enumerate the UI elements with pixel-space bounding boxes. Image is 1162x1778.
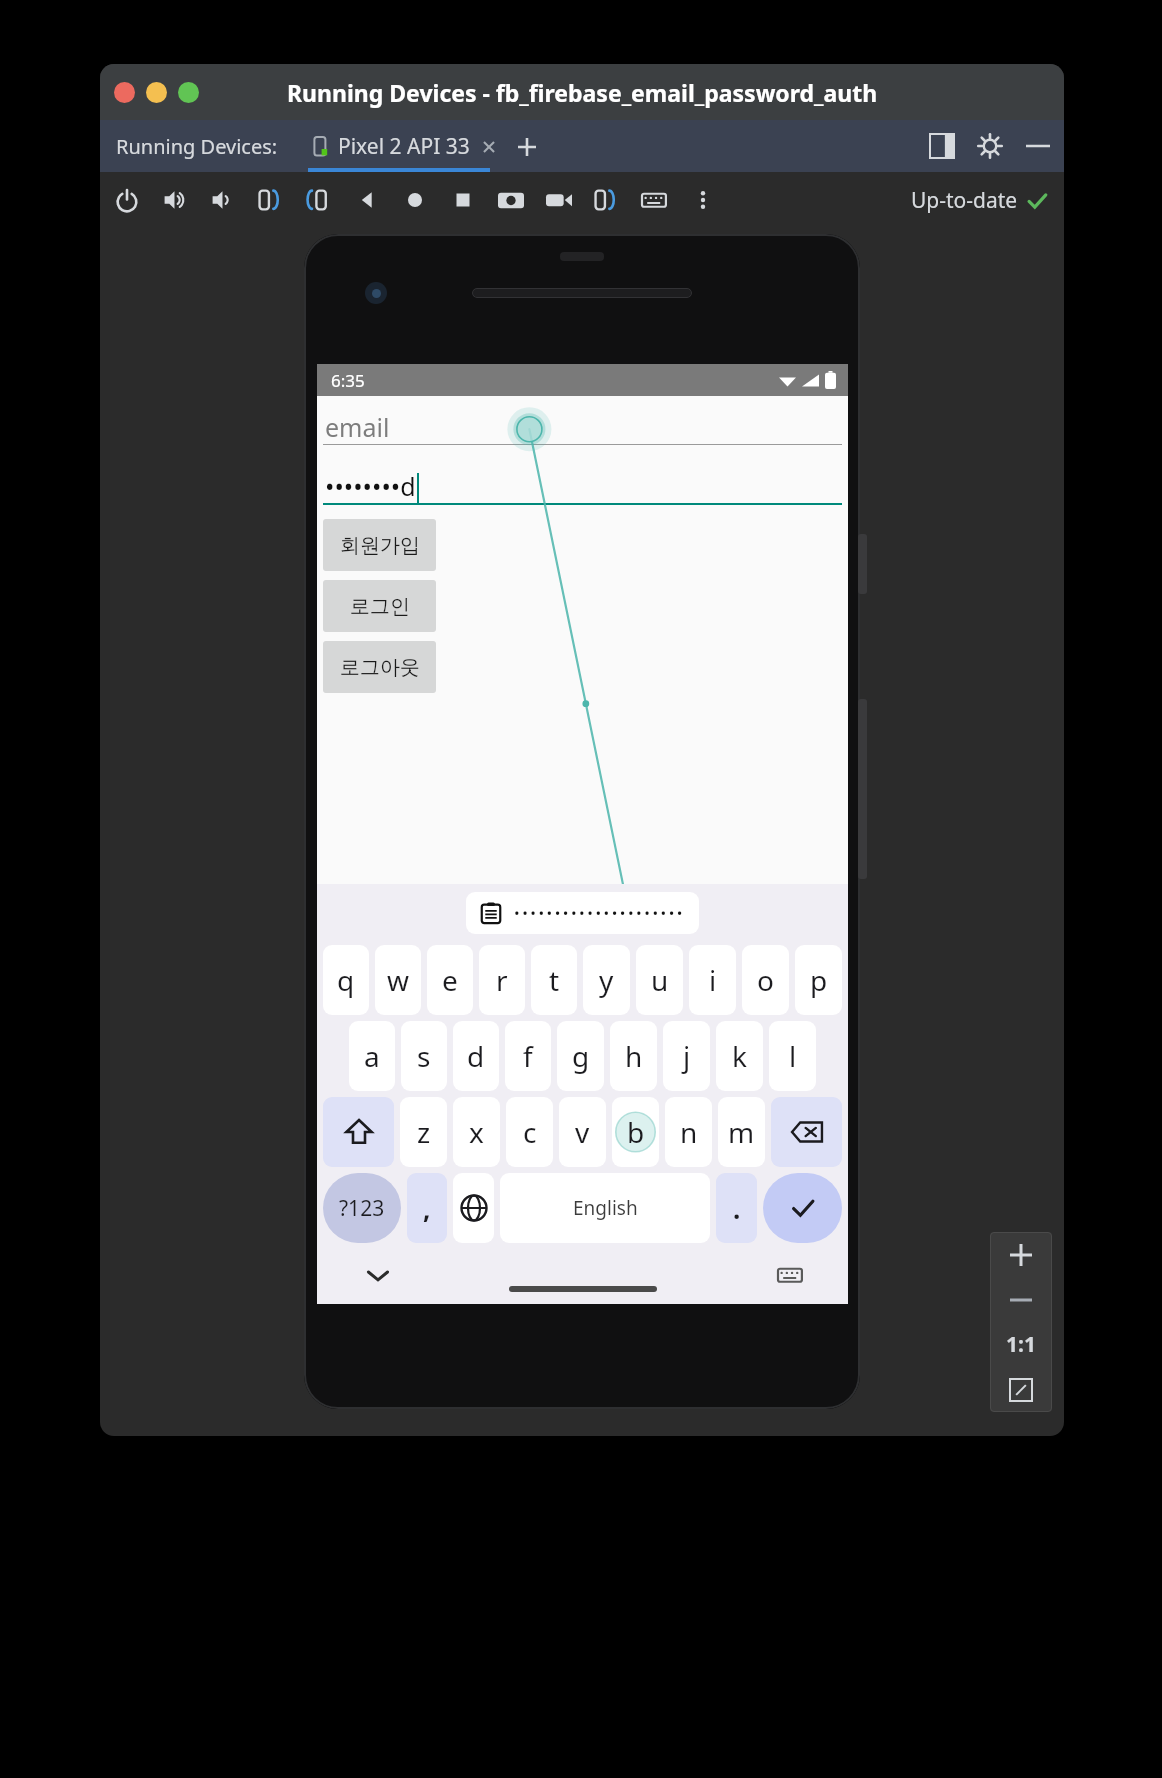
button[interactable]: Rotate right	[306, 187, 332, 213]
button[interactable]: Minimize	[146, 82, 167, 103]
button[interactable]: f	[505, 1021, 551, 1091]
button[interactable]: Screenshot	[498, 187, 524, 213]
button[interactable]: x	[453, 1097, 500, 1167]
button[interactable]: Zoom in	[990, 1232, 1052, 1277]
staticText: b	[627, 1113, 645, 1151]
button[interactable]: b	[612, 1097, 659, 1167]
button[interactable]: i	[689, 945, 736, 1015]
staticText: a	[364, 1037, 380, 1075]
button[interactable]: Add device	[516, 136, 538, 158]
staticText: l	[789, 1037, 797, 1075]
button[interactable]: Overview	[450, 187, 476, 213]
staticText: o	[757, 961, 774, 999]
button[interactable]: c	[506, 1097, 553, 1167]
staticText: d	[467, 1037, 485, 1075]
button[interactable]: e	[427, 945, 473, 1015]
staticText: i	[709, 961, 717, 999]
staticText: n	[680, 1113, 698, 1151]
staticText: v	[575, 1113, 590, 1151]
staticText: Running Devices - fb_firebase_email_pass…	[287, 77, 878, 108]
button[interactable]: s	[401, 1021, 447, 1091]
button[interactable]: Volume up	[162, 187, 188, 213]
staticText: ,	[423, 1191, 431, 1226]
button[interactable]: More	[690, 187, 716, 213]
staticText: •••••••••••••••••••••	[514, 903, 685, 923]
staticText: j	[683, 1037, 691, 1075]
button[interactable]: m	[718, 1097, 765, 1167]
button[interactable]: l	[769, 1021, 816, 1091]
staticText: English	[573, 1195, 638, 1221]
button[interactable]: Tool window options	[930, 134, 954, 158]
staticText: f	[523, 1037, 533, 1075]
button[interactable]: Zoom out	[990, 1277, 1052, 1322]
staticText: e	[442, 961, 458, 999]
button[interactable]: v	[559, 1097, 606, 1167]
button[interactable]: Keyboard settings	[778, 1262, 804, 1288]
button[interactable]: a	[349, 1021, 395, 1091]
button[interactable]: Actual size	[990, 1322, 1052, 1367]
staticText: x	[469, 1113, 484, 1151]
button[interactable]: email	[323, 402, 842, 445]
button[interactable]: 로그인	[323, 580, 436, 632]
button[interactable]: 회원가입	[323, 519, 436, 571]
button[interactable]: n	[665, 1097, 712, 1167]
staticText: w	[387, 961, 410, 999]
button[interactable]: 로그아웃	[323, 641, 436, 693]
button[interactable]: u	[636, 945, 683, 1015]
button[interactable]: g	[557, 1021, 604, 1091]
button[interactable]: Minimize window	[1026, 134, 1050, 158]
staticText: r	[496, 961, 508, 999]
button[interactable]: Hide keyboard	[363, 1260, 393, 1290]
button[interactable]: o	[742, 945, 789, 1015]
staticText: Pixel 2 API 33	[338, 132, 470, 161]
button[interactable]: p	[795, 945, 842, 1015]
staticText: q	[337, 961, 355, 999]
button[interactable]: Close	[114, 82, 135, 103]
button[interactable]: ?123	[323, 1173, 401, 1243]
button[interactable]: Settings	[978, 134, 1002, 158]
button[interactable]: q	[323, 945, 369, 1015]
button[interactable]: Home	[402, 187, 428, 213]
button[interactable]: Rotate left	[258, 187, 284, 213]
button[interactable]: •••••••••••••••••••••	[466, 892, 699, 934]
button[interactable]: y	[583, 945, 630, 1015]
button[interactable]: Maximize	[178, 82, 199, 103]
button[interactable]: Period	[716, 1173, 757, 1243]
button[interactable]: Enter	[763, 1173, 842, 1243]
button[interactable]: Comma	[407, 1173, 447, 1243]
button[interactable]: r	[479, 945, 525, 1015]
staticText: k	[732, 1037, 747, 1075]
button[interactable]: ••••••••d	[323, 461, 842, 505]
staticText: 로그아웃	[340, 655, 420, 680]
button[interactable]: English	[500, 1173, 710, 1243]
button[interactable]: Change language	[453, 1173, 494, 1243]
button[interactable]: Power	[114, 187, 140, 213]
staticText: 6:35	[331, 369, 365, 392]
staticText: y	[599, 961, 614, 999]
button[interactable]: j	[663, 1021, 710, 1091]
staticText: z	[417, 1113, 431, 1151]
button[interactable]: z	[400, 1097, 447, 1167]
button[interactable]: Pixel 2 API 33	[312, 132, 538, 161]
button[interactable]: Fit to screen	[990, 1367, 1052, 1412]
button[interactable]: Volume down	[210, 187, 236, 213]
button[interactable]: k	[716, 1021, 763, 1091]
staticText: Up-to-date	[911, 186, 1018, 215]
button[interactable]: h	[610, 1021, 657, 1091]
button[interactable]: w	[375, 945, 421, 1015]
staticText: c	[523, 1113, 537, 1151]
staticText: 1:1	[1006, 1330, 1036, 1359]
button[interactable]: t	[531, 945, 577, 1015]
button[interactable]: Shift	[323, 1097, 394, 1167]
button[interactable]: History	[594, 187, 620, 213]
button[interactable]: Record screen	[546, 187, 572, 213]
staticText: ?123	[339, 1194, 385, 1223]
staticText: .	[733, 1191, 741, 1226]
button[interactable]: d	[453, 1021, 499, 1091]
button[interactable]: Back	[354, 187, 380, 213]
button[interactable]: Close device tab	[480, 138, 498, 156]
button[interactable]: Backspace	[771, 1097, 842, 1167]
staticText: h	[625, 1037, 643, 1075]
button[interactable]: Hardware keyboard	[642, 187, 668, 213]
staticText: m	[728, 1113, 755, 1151]
